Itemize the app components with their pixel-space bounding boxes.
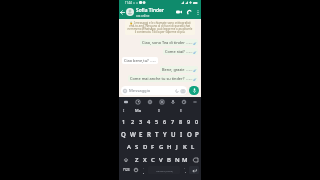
staticText: H	[167, 143, 172, 151]
button[interactable]: Shift	[119, 153, 132, 166]
staticText: L	[191, 143, 195, 151]
staticText: ?123	[123, 168, 130, 172]
button[interactable]: D	[141, 140, 149, 153]
staticText: J	[176, 143, 178, 151]
button[interactable]: I	[119, 106, 129, 115]
button[interactable]: W	[128, 127, 137, 140]
button[interactable]: 0	[193, 115, 201, 127]
staticText: 11:24	[186, 69, 192, 72]
button[interactable]: Come mai anche tu su tinder?	[128, 75, 198, 82]
button[interactable]: Call	[184, 5, 194, 19]
staticText: 7	[171, 118, 175, 125]
button[interactable]: 9	[185, 115, 193, 127]
button[interactable]: V	[157, 153, 165, 166]
staticText: G	[159, 143, 164, 151]
button[interactable]: ?123	[120, 166, 132, 174]
button[interactable]: R	[145, 127, 153, 140]
button[interactable]: Profile photo	[126, 8, 134, 16]
button[interactable]: Clipboard	[156, 97, 167, 106]
button[interactable]: N	[173, 153, 181, 166]
button[interactable]: Ciao bene,tu?	[122, 57, 158, 64]
button[interactable]: Q	[119, 127, 128, 140]
button[interactable]: B	[165, 153, 173, 166]
staticText: Messaggio	[129, 88, 151, 94]
button[interactable]: U	[169, 127, 177, 140]
staticText: Z	[135, 156, 139, 164]
button[interactable]: GIF	[120, 97, 132, 106]
button[interactable]: K	[181, 140, 189, 153]
button[interactable]: Ma	[129, 106, 147, 115]
button[interactable]: H	[165, 140, 173, 153]
button[interactable]: J	[173, 140, 181, 153]
staticText: C	[151, 156, 155, 164]
button[interactable]: Messaggio	[121, 86, 187, 95]
button[interactable]: More options	[194, 5, 201, 19]
button[interactable]: G	[157, 140, 165, 153]
staticText: E	[180, 108, 183, 113]
staticText: 5	[155, 118, 159, 125]
button[interactable]: E	[137, 127, 145, 140]
staticText: V	[159, 156, 163, 164]
button[interactable]: T	[153, 127, 161, 140]
button[interactable]: 8	[177, 115, 185, 127]
button[interactable]: ?	[181, 166, 188, 174]
button[interactable]: !	[140, 166, 147, 174]
button[interactable]: 🔒 I messaggi e le chiamate sono crittogr…	[125, 20, 195, 35]
button[interactable]: Stickers	[132, 97, 144, 106]
button[interactable]: 3	[137, 115, 145, 127]
button[interactable]: P	[193, 127, 201, 140]
button[interactable]: 1	[119, 115, 128, 127]
button[interactable]: Themes	[144, 97, 156, 106]
button[interactable]: Emoji	[132, 166, 140, 174]
staticText: 6	[163, 118, 167, 125]
button[interactable]: Video call	[173, 5, 184, 19]
button[interactable]: O	[185, 127, 193, 140]
button[interactable]: F	[149, 140, 157, 153]
button[interactable]: A	[124, 140, 133, 153]
staticText: S	[135, 143, 139, 151]
button[interactable]: Y	[161, 127, 169, 140]
button[interactable]: 2	[128, 115, 137, 127]
button[interactable]: S	[133, 140, 141, 153]
staticText: .	[185, 169, 186, 174]
button[interactable]: Back	[119, 5, 126, 19]
staticText: T	[155, 130, 159, 138]
staticText: Sofia Tinder	[136, 7, 164, 14]
button[interactable]: X	[141, 153, 149, 166]
button[interactable]: 4	[145, 115, 153, 127]
button[interactable]: 7	[169, 115, 177, 127]
button[interactable]: Bene, grazie	[160, 66, 198, 73]
staticText: O	[187, 130, 192, 138]
button[interactable]: E	[171, 106, 192, 115]
staticText: Bene, grazie	[162, 67, 185, 72]
button[interactable]: I	[177, 127, 185, 140]
button[interactable]: Space	[148, 166, 180, 174]
button[interactable]: Ciao, sono Tea di tinder	[140, 39, 198, 46]
staticText: U	[171, 130, 176, 138]
button[interactable]: Voice message	[189, 86, 199, 95]
button[interactable]: 5	[153, 115, 161, 127]
staticText: 2	[131, 118, 135, 125]
staticText: N	[175, 156, 180, 164]
staticText: Come mai anche tu su tinder?	[130, 76, 185, 81]
staticText: M	[182, 156, 188, 164]
button[interactable]: Z	[132, 153, 141, 166]
button[interactable]: L	[189, 140, 197, 153]
button[interactable]: More	[189, 97, 200, 106]
button[interactable]: Recent	[178, 97, 189, 106]
button[interactable]: M	[181, 153, 189, 166]
staticText: Italiano (Italia)	[156, 169, 173, 172]
button[interactable]: 6	[161, 115, 169, 127]
button[interactable]: Il	[147, 106, 171, 115]
button[interactable]: Enter	[189, 166, 199, 174]
button[interactable]: Voice input	[167, 97, 178, 106]
button[interactable]: C	[149, 153, 157, 166]
button[interactable]: Backspace	[189, 153, 201, 166]
staticText: 11:24	[186, 78, 192, 81]
button[interactable]: Come stai?	[163, 48, 198, 55]
staticText: Y	[163, 130, 167, 138]
staticText: !	[143, 166, 144, 169]
staticText: 🔒 I messaggi e le chiamate sono crittogr…	[127, 21, 193, 34]
staticText: 3	[139, 118, 143, 125]
staticText: B	[167, 156, 171, 164]
